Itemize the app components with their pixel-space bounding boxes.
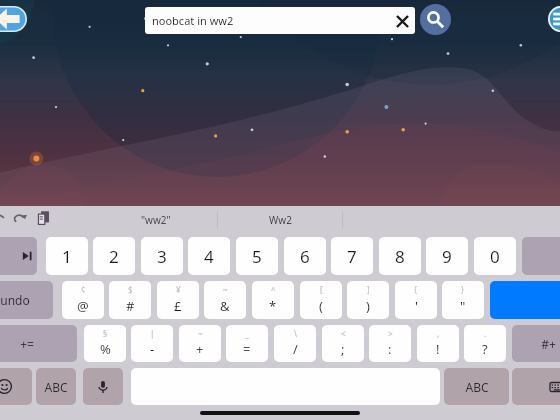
staticText: _ bbox=[245, 328, 249, 339]
button[interactable]: "ww2" bbox=[93, 206, 218, 234]
button[interactable]: 3 bbox=[141, 237, 183, 275]
button[interactable]: Backspace bbox=[522, 237, 560, 275]
staticText: ) bbox=[366, 297, 370, 315]
staticText: £ bbox=[174, 297, 182, 315]
staticText: " bbox=[460, 297, 466, 315]
button[interactable]: 9 bbox=[426, 237, 468, 275]
button[interactable]: < bbox=[322, 325, 364, 362]
staticText: . bbox=[484, 328, 487, 339]
button[interactable]: $ bbox=[109, 281, 151, 319]
staticText: + bbox=[196, 340, 204, 358]
button[interactable]: > bbox=[369, 325, 411, 362]
staticText: % bbox=[100, 340, 111, 358]
staticText: ! bbox=[436, 340, 440, 358]
button[interactable]: Change keyboard bbox=[512, 368, 560, 405]
staticText: Ww2 bbox=[269, 213, 292, 227]
staticText: \ bbox=[294, 328, 297, 339]
staticText: ; bbox=[341, 340, 345, 358]
button[interactable]: \ bbox=[274, 325, 316, 362]
button[interactable]: [ bbox=[300, 281, 342, 319]
button[interactable]: Move cursor bbox=[0, 237, 37, 275]
button[interactable]: { bbox=[395, 281, 437, 319]
button[interactable]: ~ bbox=[179, 325, 221, 362]
button[interactable]: noobcat in ww2 bbox=[145, 7, 415, 34]
staticText: > bbox=[388, 328, 393, 339]
staticText: ABC bbox=[465, 379, 489, 395]
staticText: = bbox=[243, 340, 251, 358]
staticText: ( bbox=[319, 297, 323, 315]
button[interactable]: Letters bbox=[36, 368, 76, 405]
staticText: 9 bbox=[442, 245, 452, 268]
button[interactable]: ¥ bbox=[157, 281, 199, 319]
staticText: # bbox=[126, 297, 135, 315]
staticText: noobcat in ww2 bbox=[152, 13, 234, 28]
button[interactable]: , bbox=[417, 325, 459, 362]
staticText: ' bbox=[415, 297, 418, 315]
button[interactable]: 6 bbox=[284, 237, 326, 275]
button[interactable]: § bbox=[84, 325, 126, 362]
button[interactable]: ] bbox=[347, 281, 389, 319]
staticText: & bbox=[220, 297, 230, 315]
button[interactable]: 2 bbox=[93, 237, 135, 275]
staticText: / bbox=[293, 340, 298, 358]
button[interactable]: | bbox=[131, 325, 173, 362]
button[interactable]: . bbox=[464, 325, 506, 362]
staticText: : bbox=[388, 340, 392, 358]
staticText: "ww2" bbox=[141, 213, 171, 227]
staticText: [ bbox=[320, 284, 323, 295]
button[interactable]: _ bbox=[226, 325, 268, 362]
staticText: += bbox=[20, 336, 34, 352]
button[interactable]: ^ bbox=[252, 281, 294, 319]
staticText: 7 bbox=[347, 245, 357, 268]
staticText: 4 bbox=[204, 245, 214, 268]
button[interactable]: Letters bbox=[444, 368, 509, 405]
staticText: #+ bbox=[541, 336, 556, 352]
staticText: 2 bbox=[109, 245, 119, 268]
button[interactable]: Ww2 bbox=[218, 206, 343, 234]
button[interactable]: More symbols bbox=[512, 325, 560, 362]
staticText: ^ bbox=[271, 284, 276, 295]
staticText: 1 bbox=[62, 245, 72, 268]
staticText: § bbox=[103, 328, 108, 339]
staticText: ~ bbox=[223, 284, 228, 295]
staticText: ] bbox=[367, 284, 370, 295]
button[interactable]: Emoji bbox=[0, 368, 32, 405]
staticText: 5 bbox=[252, 245, 262, 268]
staticText: ¢ bbox=[81, 284, 86, 295]
staticText: { bbox=[414, 284, 418, 295]
staticText: } bbox=[461, 284, 465, 295]
staticText: 3 bbox=[157, 245, 167, 268]
button[interactable]: Back bbox=[0, 6, 27, 32]
button[interactable]: Voice input bbox=[83, 368, 123, 405]
staticText: ¥ bbox=[176, 284, 181, 295]
staticText: | bbox=[150, 328, 155, 339]
button[interactable]: 7 bbox=[331, 237, 373, 275]
staticText: 0 bbox=[490, 245, 500, 268]
button[interactable]: ~ bbox=[204, 281, 246, 319]
button[interactable]: Undo bbox=[0, 281, 53, 319]
button[interactable]: 0 bbox=[474, 237, 516, 275]
staticText: undo bbox=[0, 292, 30, 308]
button[interactable]: Clipboard bbox=[38, 211, 49, 225]
button[interactable]: Enter bbox=[490, 281, 560, 319]
staticText: ABC bbox=[44, 379, 68, 395]
button[interactable]: ¢ bbox=[62, 281, 104, 319]
staticText: $ bbox=[128, 284, 133, 295]
button[interactable]: } bbox=[442, 281, 484, 319]
staticText: - bbox=[150, 340, 155, 358]
button[interactable]: 5 bbox=[236, 237, 278, 275]
button[interactable]: 1 bbox=[46, 237, 88, 275]
button[interactable]: 8 bbox=[379, 237, 421, 275]
button[interactable]: Undo bbox=[0, 212, 6, 227]
button[interactable]: Search bbox=[420, 4, 451, 35]
staticText: ~ bbox=[198, 328, 203, 339]
staticText: ? bbox=[482, 340, 488, 358]
button[interactable]: Clear bbox=[391, 10, 413, 32]
button[interactable]: 4 bbox=[188, 237, 230, 275]
button[interactable]: Symbols bbox=[0, 325, 77, 362]
button[interactable]: Redo bbox=[14, 212, 27, 225]
staticText: < bbox=[341, 328, 346, 339]
button[interactable]: Menu bbox=[548, 6, 560, 32]
staticText: * bbox=[269, 297, 277, 315]
